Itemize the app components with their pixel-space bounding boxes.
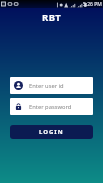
button[interactable]: LOGIN bbox=[10, 125, 93, 139]
button[interactable]: Enter user id bbox=[10, 77, 93, 94]
staticText: Enter password bbox=[29, 103, 72, 111]
staticText: 5:26 PM bbox=[83, 1, 102, 8]
button[interactable]: Enter password bbox=[10, 98, 93, 115]
staticText: RBT bbox=[42, 11, 62, 24]
staticText: Enter user id bbox=[29, 82, 64, 90]
staticText: LOGIN bbox=[39, 128, 64, 136]
